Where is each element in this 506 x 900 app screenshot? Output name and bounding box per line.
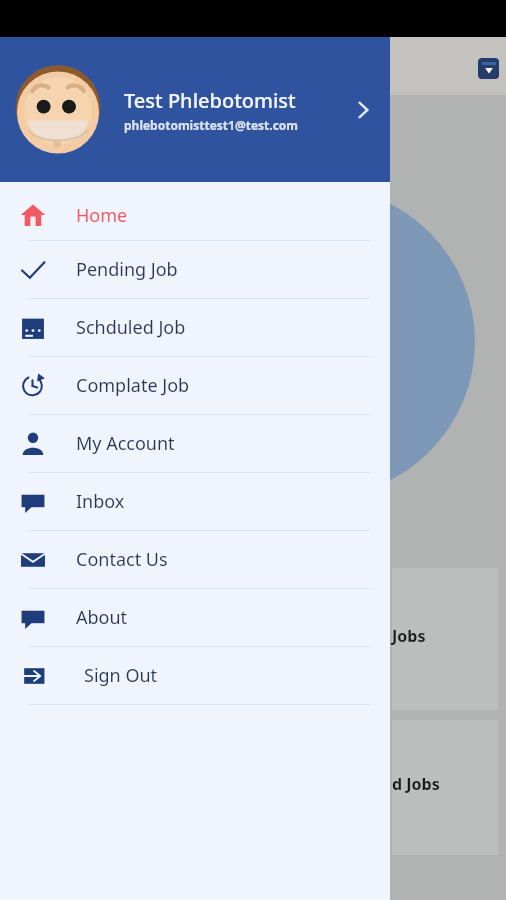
staticText: Test Phlebotomist [124, 87, 296, 114]
staticText: Jobs [392, 625, 426, 647]
button[interactable]: Pending Job [0, 241, 390, 298]
button[interactable]: Jobs [392, 568, 498, 710]
staticText: Contact Us [76, 547, 168, 572]
button[interactable]: Sign Out [0, 647, 390, 704]
staticText: About [76, 605, 128, 630]
button[interactable]: About [0, 589, 390, 646]
button[interactable]: My Account [0, 415, 390, 472]
staticText: Sign Out [84, 663, 158, 688]
button[interactable]: Schduled Job [0, 299, 390, 356]
button[interactable]: Inbox [0, 473, 390, 530]
button[interactable]: d Jobs [392, 720, 498, 855]
staticText: Pending Job [76, 257, 178, 282]
button[interactable]: Test Phlebotomist [0, 37, 390, 182]
staticText: Schduled Job [76, 315, 186, 340]
button[interactable]: Complate Job [0, 357, 390, 414]
staticText: My Account [76, 431, 175, 456]
button[interactable]: Contact Us [0, 531, 390, 588]
staticText: d Jobs [392, 773, 440, 795]
staticText: Inbox [76, 489, 125, 514]
button[interactable]: Download [478, 58, 499, 79]
button[interactable]: Home [0, 190, 390, 240]
staticText: Home [76, 203, 128, 228]
staticText: phlebotomisttest1@test.com [124, 117, 299, 133]
staticText: Complate Job [76, 373, 190, 398]
